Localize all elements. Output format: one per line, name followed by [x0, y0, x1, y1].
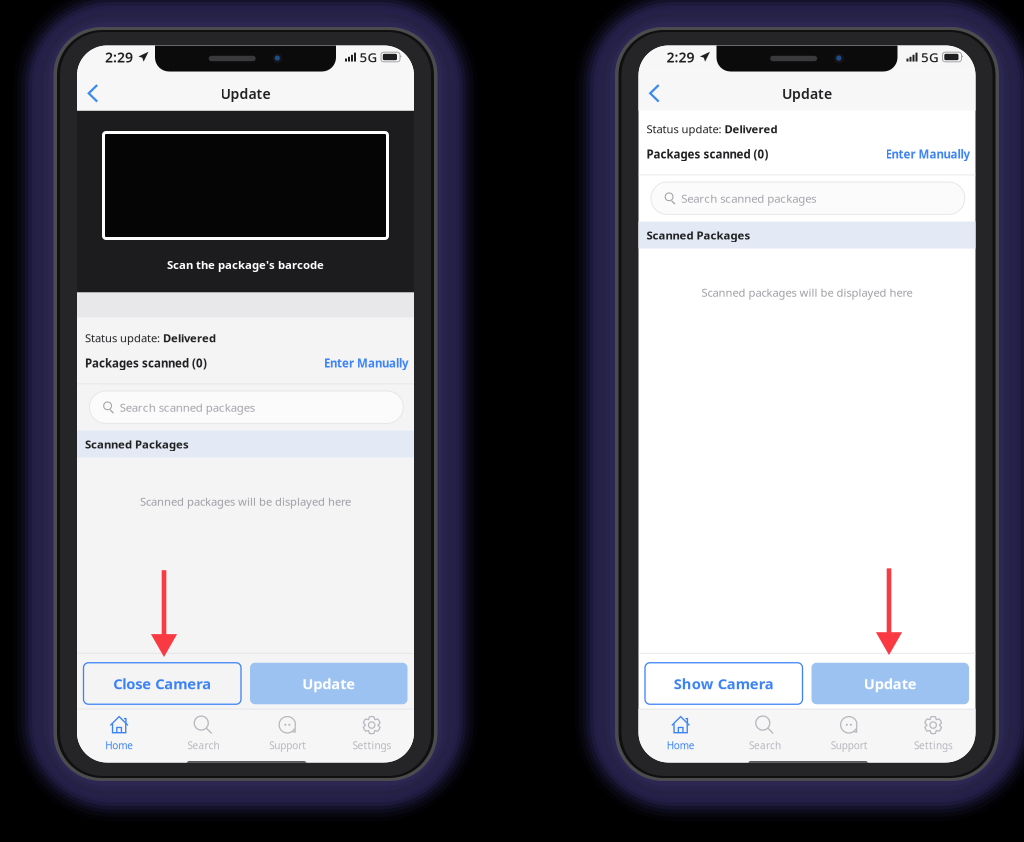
button[interactable]: Search scanned packages — [89, 391, 403, 423]
staticText: Scanned packages will be displayed here — [701, 285, 912, 300]
button[interactable]: Show Camera — [645, 663, 802, 704]
button[interactable]: Home — [77, 711, 161, 757]
staticText: Search — [749, 738, 781, 752]
button[interactable]: Search — [723, 711, 807, 757]
button[interactable]: Enter Manually — [885, 146, 970, 162]
button[interactable]: Close Camera — [83, 663, 241, 704]
button[interactable]: Update — [250, 663, 407, 704]
button[interactable]: Back — [78, 74, 107, 113]
staticText: Scan the package's barcode — [167, 257, 324, 272]
staticText: Packages scanned (0) — [85, 355, 207, 371]
staticText: Update — [864, 673, 917, 693]
staticText: Status update: — [85, 330, 163, 346]
staticText: Show Camera — [674, 673, 774, 693]
staticText: Support — [831, 738, 868, 752]
staticText: Delivered — [724, 121, 777, 137]
button[interactable]: Support — [807, 711, 891, 757]
button[interactable]: Update — [811, 663, 969, 704]
staticText: Scanned packages will be displayed here — [140, 494, 351, 509]
staticText: Update — [220, 84, 270, 103]
staticText: 2:29 — [666, 47, 694, 67]
button[interactable]: Search scanned packages — [651, 182, 965, 214]
staticText: Home — [105, 738, 133, 752]
staticText: Search scanned packages — [681, 190, 816, 206]
button[interactable]: Search — [161, 711, 245, 757]
staticText: 2:29 — [105, 47, 133, 67]
staticText: Home — [667, 738, 695, 752]
button[interactable]: Back — [639, 74, 669, 113]
staticText: Close Camera — [113, 673, 211, 693]
staticText: Enter Manually — [324, 355, 409, 371]
staticText: Settings — [352, 738, 391, 752]
staticText: Search scanned packages — [120, 399, 255, 415]
staticText: Delivered — [163, 330, 216, 346]
staticText: Search — [187, 738, 219, 752]
button[interactable]: Settings — [891, 711, 975, 757]
button[interactable]: Support — [245, 711, 330, 757]
staticText: Settings — [914, 738, 953, 752]
staticText: Status update: — [646, 121, 724, 137]
staticText: Packages scanned (0) — [646, 146, 768, 162]
staticText: Support — [269, 738, 306, 752]
staticText: Enter Manually — [885, 146, 970, 162]
button[interactable]: Settings — [330, 711, 414, 757]
staticText: Scanned Packages — [646, 227, 750, 243]
staticText: Update — [782, 84, 832, 103]
staticText: Scanned Packages — [85, 436, 189, 452]
staticText: 5G — [921, 48, 939, 66]
button[interactable]: Enter Manually — [324, 355, 409, 371]
button[interactable]: Home — [638, 711, 723, 757]
staticText: Update — [302, 673, 355, 693]
staticText: 5G — [359, 48, 377, 66]
